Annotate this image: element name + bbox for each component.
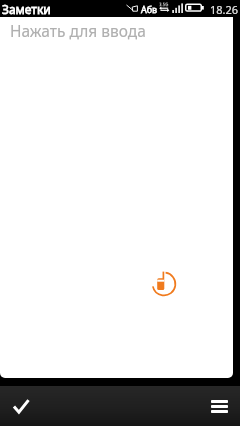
button[interactable]: Accept <box>0 386 44 426</box>
staticText: Заметки <box>2 1 51 17</box>
staticText: 18.26 <box>210 2 239 17</box>
button[interactable]: Нажать для ввода <box>0 17 233 378</box>
staticText: Абв <box>141 3 158 15</box>
staticText: Нажать для ввода <box>10 20 146 41</box>
button[interactable]: Menu <box>198 386 240 426</box>
